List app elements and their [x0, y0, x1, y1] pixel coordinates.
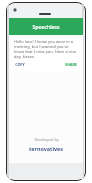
button[interactable]: Developer logo — [28, 144, 64, 153]
staticText: SHARE — [65, 62, 77, 67]
staticText: Speechless — [32, 23, 60, 30]
button[interactable]: Speechless — [9, 23, 83, 30]
button[interactable]: SHARE — [64, 61, 78, 68]
button[interactable]: COPY — [14, 61, 26, 68]
button[interactable]: Hello love! I know you were in a meeting… — [11, 36, 81, 71]
staticText: ternovatives — [29, 145, 63, 152]
staticText: Developed by — [34, 137, 59, 142]
staticText: Hello love! I know you were in a meeting… — [14, 39, 78, 59]
staticText: COPY — [15, 62, 25, 67]
